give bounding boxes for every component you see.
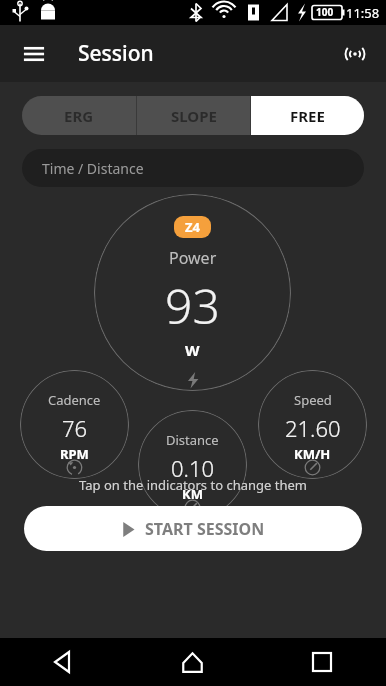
staticText: ERG (64, 106, 94, 126)
staticText: KM/H (294, 445, 331, 463)
staticText: Cadence (48, 391, 101, 409)
button[interactable]: Back (0, 638, 128, 686)
button[interactable]: Speed indicator (258, 370, 367, 479)
button[interactable]: ERG (22, 96, 136, 135)
button[interactable]: START SESSION (24, 506, 362, 551)
button[interactable]: FREE (251, 96, 364, 135)
button[interactable]: SLOPE (137, 96, 250, 135)
staticText: Tap on the indicators to change them (0, 476, 386, 494)
staticText: FREE (290, 106, 325, 126)
staticText: 0.10 (171, 453, 215, 483)
staticText: START SESSION (145, 518, 265, 540)
staticText: 11:58 (346, 4, 380, 22)
staticText: SLOPE (171, 106, 217, 126)
button[interactable]: Z4 (94, 194, 291, 391)
staticText: RPM (60, 445, 89, 463)
staticText: 21.60 (285, 413, 341, 443)
staticText: Power (169, 247, 217, 269)
button[interactable]: Time / Distance (22, 149, 364, 187)
button[interactable]: Cadence indicator (20, 370, 129, 479)
staticText: Time / Distance (42, 159, 144, 178)
staticText: Z4 (185, 218, 200, 236)
button[interactable]: Open navigation menu (12, 32, 56, 76)
staticText: Speed (294, 391, 332, 409)
staticText: 100 (316, 5, 334, 19)
button[interactable]: Distance indicator (138, 410, 247, 519)
button[interactable]: Home (128, 638, 257, 686)
staticText: 93 (165, 273, 220, 338)
staticText: Session (78, 39, 154, 68)
staticText: KM (182, 485, 203, 503)
staticText: W (185, 340, 200, 360)
staticText: Distance (166, 431, 219, 449)
staticText: 76 (62, 413, 88, 443)
button[interactable]: Broadcast sensors (332, 31, 378, 77)
button[interactable]: Recent apps (257, 638, 386, 686)
